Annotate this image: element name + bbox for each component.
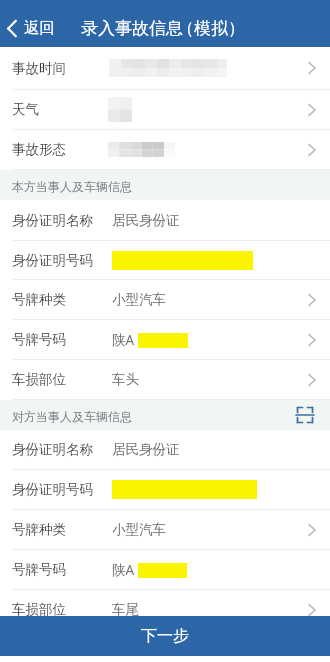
- staticText: 车损部位: [12, 601, 66, 618]
- staticText: 陕A: [112, 331, 135, 349]
- staticText: 身份证明号码: [12, 481, 93, 498]
- button[interactable]: 下一步: [0, 616, 330, 656]
- staticText: 号牌种类: [12, 521, 66, 538]
- button[interactable]: 身份证明号码: [0, 470, 330, 509]
- button[interactable]: 事故时间: [0, 47, 330, 89]
- button[interactable]: 事故形态: [0, 130, 330, 169]
- staticText: 下一步: [141, 626, 189, 646]
- button[interactable]: 号牌种类: [0, 510, 330, 549]
- button[interactable]: 号牌种类: [0, 280, 330, 319]
- staticText: 身份证明号码: [12, 252, 93, 269]
- staticText: （模拟）: [177, 18, 245, 39]
- staticText: 号牌种类: [12, 291, 66, 308]
- button[interactable]: 号牌号码: [0, 550, 330, 589]
- staticText: 身份证明名称: [12, 212, 93, 229]
- staticText: 对方当事人及车辆信息: [12, 409, 132, 424]
- staticText: 号牌号码: [12, 561, 66, 578]
- button[interactable]: 身份证明号码: [0, 241, 330, 279]
- button[interactable]: Scan: [294, 404, 316, 426]
- staticText: 天气: [12, 101, 39, 118]
- staticText: 事故形态: [12, 141, 66, 158]
- button[interactable]: 身份证明名称: [0, 430, 330, 469]
- staticText: 车损部位: [12, 371, 66, 388]
- staticText: 小型汽车: [112, 521, 166, 538]
- staticText: 居民身份证: [112, 441, 180, 458]
- staticText: 本方当事人及车辆信息: [12, 179, 132, 194]
- staticText: 身份证明名称: [12, 441, 93, 458]
- staticText: 录入事故信息: [81, 18, 183, 39]
- staticText: 小型汽车: [112, 291, 166, 308]
- staticText: 陕A: [112, 561, 135, 579]
- staticText: 返回: [24, 18, 55, 38]
- button[interactable]: 车损部位: [0, 360, 330, 399]
- staticText: 车尾: [112, 601, 139, 618]
- staticText: 号牌号码: [12, 331, 66, 348]
- button[interactable]: 返回: [0, 9, 65, 47]
- button[interactable]: 天气: [0, 90, 330, 129]
- button[interactable]: 身份证明名称: [0, 200, 330, 240]
- staticText: 事故时间: [12, 60, 66, 77]
- staticText: 居民身份证: [112, 212, 180, 229]
- button[interactable]: 号牌号码: [0, 320, 330, 359]
- button[interactable]: 车损部位: [0, 590, 330, 629]
- staticText: 车头: [112, 371, 139, 388]
